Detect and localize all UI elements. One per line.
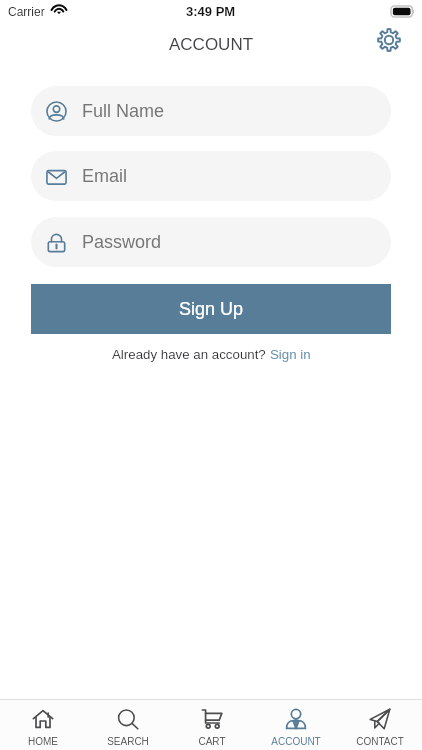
button[interactable]: HOME: [0, 704, 85, 750]
staticText: ACCOUNT: [271, 736, 321, 747]
staticText: 3:49 PM: [186, 4, 236, 19]
button[interactable]: CONTACT: [338, 704, 422, 750]
button[interactable]: Full Name: [31, 86, 391, 136]
button[interactable]: Sign Up: [31, 284, 391, 334]
button[interactable]: CART: [170, 704, 254, 750]
staticText: Carrier: [8, 5, 45, 18]
staticText: CART: [198, 736, 226, 747]
staticText: CONTACT: [356, 736, 404, 747]
button[interactable]: Settings: [372, 23, 406, 57]
button[interactable]: Password: [31, 217, 391, 267]
button[interactable]: ACCOUNT: [254, 704, 338, 750]
staticText: SEARCH: [107, 736, 149, 747]
button[interactable]: Sign in: [270, 347, 311, 362]
staticText: Full Name: [82, 101, 165, 121]
staticText: Sign in: [270, 347, 311, 362]
staticText: HOME: [28, 736, 58, 747]
staticText: Password: [82, 232, 162, 252]
staticText: Sign Up: [179, 299, 244, 319]
staticText: Already have an account?: [112, 347, 270, 362]
button[interactable]: Email: [31, 151, 391, 201]
button[interactable]: SEARCH: [85, 704, 170, 750]
staticText: Email: [82, 166, 128, 186]
staticText: ACCOUNT: [169, 35, 254, 54]
